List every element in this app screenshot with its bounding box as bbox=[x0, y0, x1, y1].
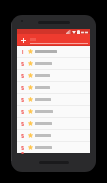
button[interactable] bbox=[17, 130, 90, 142]
button[interactable] bbox=[17, 82, 90, 94]
button[interactable] bbox=[17, 70, 90, 82]
button[interactable] bbox=[17, 46, 90, 58]
button[interactable] bbox=[17, 94, 90, 106]
button[interactable] bbox=[17, 58, 90, 70]
button[interactable] bbox=[17, 106, 90, 118]
button[interactable]: Search field bbox=[30, 35, 89, 45]
button[interactable] bbox=[17, 142, 90, 153]
button[interactable]: Add bbox=[19, 36, 28, 45]
button[interactable] bbox=[17, 118, 90, 130]
